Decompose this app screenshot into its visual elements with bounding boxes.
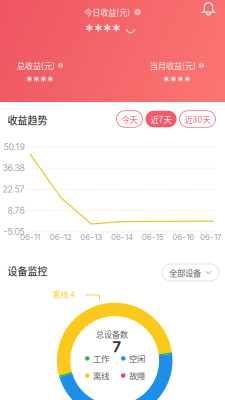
staticText: 06-17	[200, 232, 222, 242]
staticText: 06-15	[142, 232, 164, 242]
button[interactable]: 通知	[196, 0, 221, 21]
staticText: 36.38	[2, 163, 24, 173]
staticText: 今日收益(元)	[84, 6, 130, 18]
staticText: 今天	[121, 113, 137, 125]
staticText: ****	[85, 20, 121, 41]
button[interactable]: 近7天	[145, 111, 176, 127]
staticText: 近7天	[150, 113, 171, 125]
staticText: 故障	[129, 369, 145, 382]
button[interactable]: 近30天	[179, 111, 215, 127]
staticText: 离线 4	[52, 288, 74, 300]
staticText: 06-16	[172, 232, 194, 242]
staticText: 设备监控	[7, 264, 47, 278]
staticText: 06-13	[80, 232, 102, 242]
staticText: 22.57	[2, 184, 24, 195]
staticText: 50.19	[3, 142, 24, 152]
staticText: 06-12	[50, 232, 72, 242]
staticText: 工作	[93, 352, 109, 364]
staticText: 8.76	[7, 205, 24, 216]
staticText: 近30天	[184, 113, 210, 125]
staticText: ****	[163, 73, 191, 89]
staticText: -5.05	[3, 227, 24, 237]
staticText: 06-14	[111, 232, 133, 242]
staticText: 当月收益(元)	[150, 59, 196, 71]
staticText: ****	[26, 73, 54, 89]
staticText: 空闲	[129, 352, 145, 364]
staticText: 7	[112, 338, 121, 356]
staticText: 总设备数	[96, 328, 128, 340]
staticText: 06-11	[20, 232, 40, 242]
staticText: 离线	[93, 369, 109, 382]
staticText: 总收益(元)	[17, 59, 55, 71]
button[interactable]: 全部设备	[162, 264, 219, 281]
staticText: 收益趋势	[7, 113, 47, 127]
staticText: 全部设备	[169, 266, 201, 279]
button[interactable]: 今天	[116, 111, 142, 127]
